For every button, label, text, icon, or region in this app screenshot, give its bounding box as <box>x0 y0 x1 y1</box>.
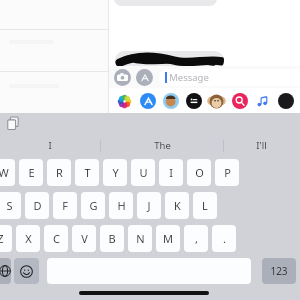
staticText: K <box>174 198 181 213</box>
button[interactable]: O <box>187 159 211 186</box>
button[interactable]: I <box>159 159 183 186</box>
button[interactable]: App Store <box>136 69 153 86</box>
staticText: M <box>163 231 173 246</box>
button[interactable]: Apple Pay <box>182 89 205 113</box>
staticText: X <box>25 231 32 246</box>
button[interactable]: B <box>100 225 124 252</box>
staticText: L <box>202 198 208 213</box>
button[interactable]: The <box>101 135 223 156</box>
button[interactable]: More <box>274 89 297 113</box>
staticText: D <box>33 198 42 213</box>
button[interactable]: V <box>72 225 96 252</box>
staticText: G <box>89 198 98 213</box>
staticText: O <box>195 165 204 180</box>
staticText: J <box>147 198 151 213</box>
staticText: I <box>48 139 52 152</box>
button[interactable]: I <box>0 135 100 156</box>
button[interactable]: , <box>184 225 208 252</box>
button[interactable]: T <box>75 159 99 186</box>
staticText: Z <box>0 231 4 246</box>
staticText: C <box>53 231 60 246</box>
staticText: S <box>6 198 13 213</box>
button[interactable]: N <box>128 225 152 252</box>
staticText: 123 <box>270 264 288 278</box>
staticText: U <box>139 165 148 180</box>
button[interactable]: L <box>193 192 217 219</box>
button[interactable]: App Store <box>136 89 159 113</box>
staticText: I <box>169 165 173 180</box>
button[interactable]: R <box>47 159 71 186</box>
button[interactable]: I'll <box>224 135 298 156</box>
staticText: I'll <box>256 139 267 152</box>
button[interactable]: C <box>44 225 68 252</box>
button[interactable]: J <box>137 192 161 219</box>
button[interactable]: Z <box>0 225 12 252</box>
staticText: . <box>223 231 226 246</box>
button[interactable]: Camera <box>114 69 131 86</box>
staticText: Y <box>112 165 119 180</box>
staticText: F <box>62 198 68 213</box>
button[interactable]: H <box>109 192 133 219</box>
button[interactable]: K <box>165 192 189 219</box>
staticText: B <box>108 231 116 246</box>
button[interactable]: X <box>16 225 40 252</box>
staticText: P <box>224 165 231 180</box>
staticText: R <box>56 165 63 180</box>
button[interactable]: Emoji <box>14 258 39 284</box>
staticText: , <box>195 231 198 246</box>
staticText: Message <box>169 71 209 84</box>
button[interactable]: Photos <box>113 89 136 113</box>
button[interactable]: W <box>0 159 15 186</box>
button[interactable]: . <box>212 225 236 252</box>
button[interactable]: P <box>215 159 239 186</box>
staticText: E <box>28 165 35 180</box>
staticText: W <box>0 165 9 180</box>
staticText: The <box>154 139 171 152</box>
button[interactable]: M <box>156 225 180 252</box>
button[interactable]: Message <box>159 69 300 86</box>
staticText: T <box>84 165 91 180</box>
button[interactable]: Next keyboard <box>0 258 11 284</box>
button[interactable]: Y <box>103 159 127 186</box>
button[interactable]: Animoji <box>205 89 228 113</box>
button[interactable]: Paste <box>6 116 21 131</box>
button[interactable]: 123 <box>262 258 296 284</box>
button[interactable]: S <box>0 192 21 219</box>
button[interactable]: G <box>81 192 105 219</box>
button[interactable]: Memoji <box>159 89 182 113</box>
button[interactable]: Music <box>251 89 274 113</box>
staticText: H <box>117 198 126 213</box>
staticText: V <box>81 231 88 246</box>
button[interactable]: D <box>25 192 49 219</box>
staticText: N <box>136 231 145 246</box>
button[interactable]: E <box>19 159 43 186</box>
button[interactable]: U <box>131 159 155 186</box>
button[interactable]: F <box>53 192 77 219</box>
button[interactable]: Images <box>228 89 251 113</box>
